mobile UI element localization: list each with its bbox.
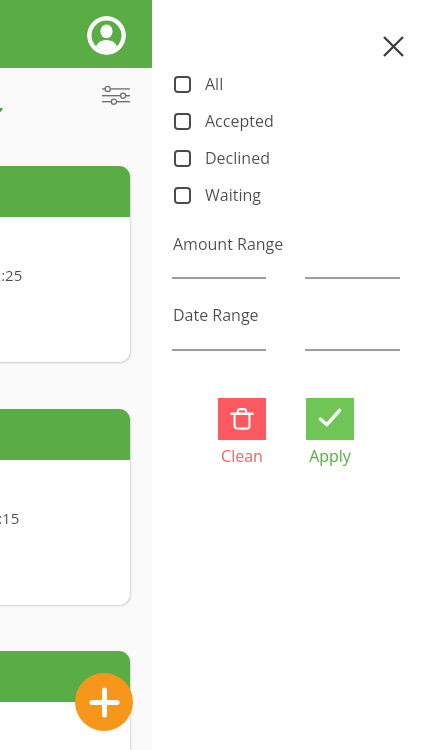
button[interactable]: Declined — [174, 145, 384, 171]
staticText: Apply — [309, 445, 351, 467]
button[interactable]: Waiting — [174, 182, 384, 208]
button[interactable]: Profile — [87, 16, 126, 55]
staticText: All — [205, 73, 224, 95]
button[interactable]: 09:40 — [0, 651, 130, 750]
staticText: Waiting — [205, 184, 261, 206]
button[interactable]: Accepted — [174, 108, 384, 134]
staticText: Accepted — [205, 110, 274, 132]
button[interactable]: Clean — [218, 398, 266, 467]
staticText: Amount Range — [173, 233, 284, 255]
button[interactable]: Filter — [102, 86, 130, 103]
button[interactable]: 10:15 — [0, 409, 130, 605]
staticText: 12:25 — [0, 265, 23, 285]
staticText: Clean — [221, 445, 263, 467]
staticText: Declined — [205, 147, 270, 169]
button[interactable]: Apply — [306, 398, 354, 467]
button[interactable]: 12:25 — [0, 166, 130, 362]
staticText: 10:15 — [0, 508, 20, 528]
button[interactable]: Add — [75, 673, 133, 731]
button[interactable]: All — [174, 71, 384, 97]
staticText: Date Range — [173, 304, 259, 326]
button[interactable]: Close — [377, 30, 410, 63]
